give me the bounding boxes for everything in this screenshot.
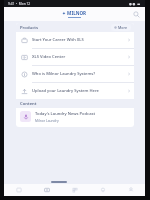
button[interactable]: Alerts	[89, 184, 117, 196]
button[interactable]: Who is Milnor Laundry Systems?	[16, 66, 134, 82]
staticText: Products	[20, 25, 39, 31]
staticText: Content	[20, 101, 37, 107]
button[interactable]: Today's Laundry News Podcast	[16, 108, 134, 125]
staticText: ● ● ▬	[129, 2, 141, 6]
staticText: Today's Laundry News Podcast	[35, 111, 96, 117]
staticText: Start Your Career With XLS	[32, 37, 125, 43]
button[interactable]: Profile	[117, 184, 145, 196]
button[interactable]: Upload your Laundry System Here	[16, 83, 134, 99]
staticText: Upload your Laundry System Here	[32, 88, 125, 94]
staticText: ✦ MILNOR	[62, 10, 87, 16]
button[interactable]: Start Your Career With XLS	[16, 32, 134, 48]
button[interactable]: XLS Video Center	[16, 49, 134, 65]
staticText: Who is Milnor Laundry Systems?	[32, 71, 125, 77]
button[interactable]: Search	[131, 9, 142, 20]
button[interactable]: Home	[4, 184, 33, 196]
staticText: More	[118, 25, 128, 30]
button[interactable]: Products	[33, 184, 61, 196]
button[interactable]: More	[111, 24, 131, 31]
button[interactable]: Library	[61, 184, 89, 196]
staticText: XLS Video Center	[32, 54, 125, 60]
staticText: Milnor Laundry	[35, 118, 59, 122]
staticText: 9:41 • Mon 12	[8, 2, 31, 6]
